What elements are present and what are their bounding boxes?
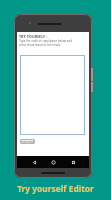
button[interactable]: Home [48, 156, 59, 168]
button[interactable]: Recent apps [68, 156, 79, 168]
button[interactable]: Back [29, 156, 40, 168]
staticText: show result [20, 140, 35, 144]
staticText: Try yourself Editor [17, 183, 94, 194]
button[interactable]: show result [20, 139, 35, 144]
button[interactable] [20, 55, 85, 135]
staticText: TRY YOURSELF : [19, 34, 48, 39]
staticText: Type the code or copy/paste below and pr… [19, 39, 73, 47]
